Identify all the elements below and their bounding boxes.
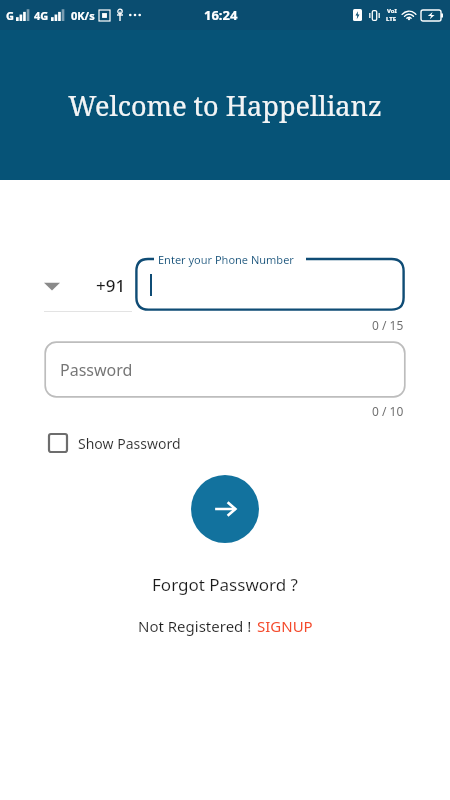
staticText: G (6, 8, 14, 23)
button[interactable]: Forgot Password ? (0, 573, 450, 596)
staticText: Welcome to Happellianz (68, 87, 382, 124)
staticText: 0 / 15 (372, 317, 404, 333)
staticText: Enter your Phone Number (158, 252, 294, 267)
staticText: Not Registered ! (138, 616, 252, 636)
button[interactable]: Enter your Phone Number (134, 250, 406, 312)
staticText: +91 (96, 274, 126, 297)
staticText: 16:24 (204, 6, 238, 24)
staticText: VoI (387, 7, 397, 15)
staticText: LTE (386, 15, 397, 23)
staticText: 0K/s (71, 8, 95, 23)
staticText: Show Password (78, 434, 181, 453)
button[interactable]: Select country code (44, 274, 132, 312)
button[interactable]: Show Password (48, 433, 181, 453)
staticText: 0 / 10 (372, 403, 404, 419)
button[interactable]: Password (44, 341, 406, 398)
staticText: Password (60, 359, 133, 381)
staticText: 4G (34, 8, 49, 23)
button[interactable]: SIGNUP (257, 616, 313, 636)
button[interactable]: Submit (191, 475, 259, 543)
